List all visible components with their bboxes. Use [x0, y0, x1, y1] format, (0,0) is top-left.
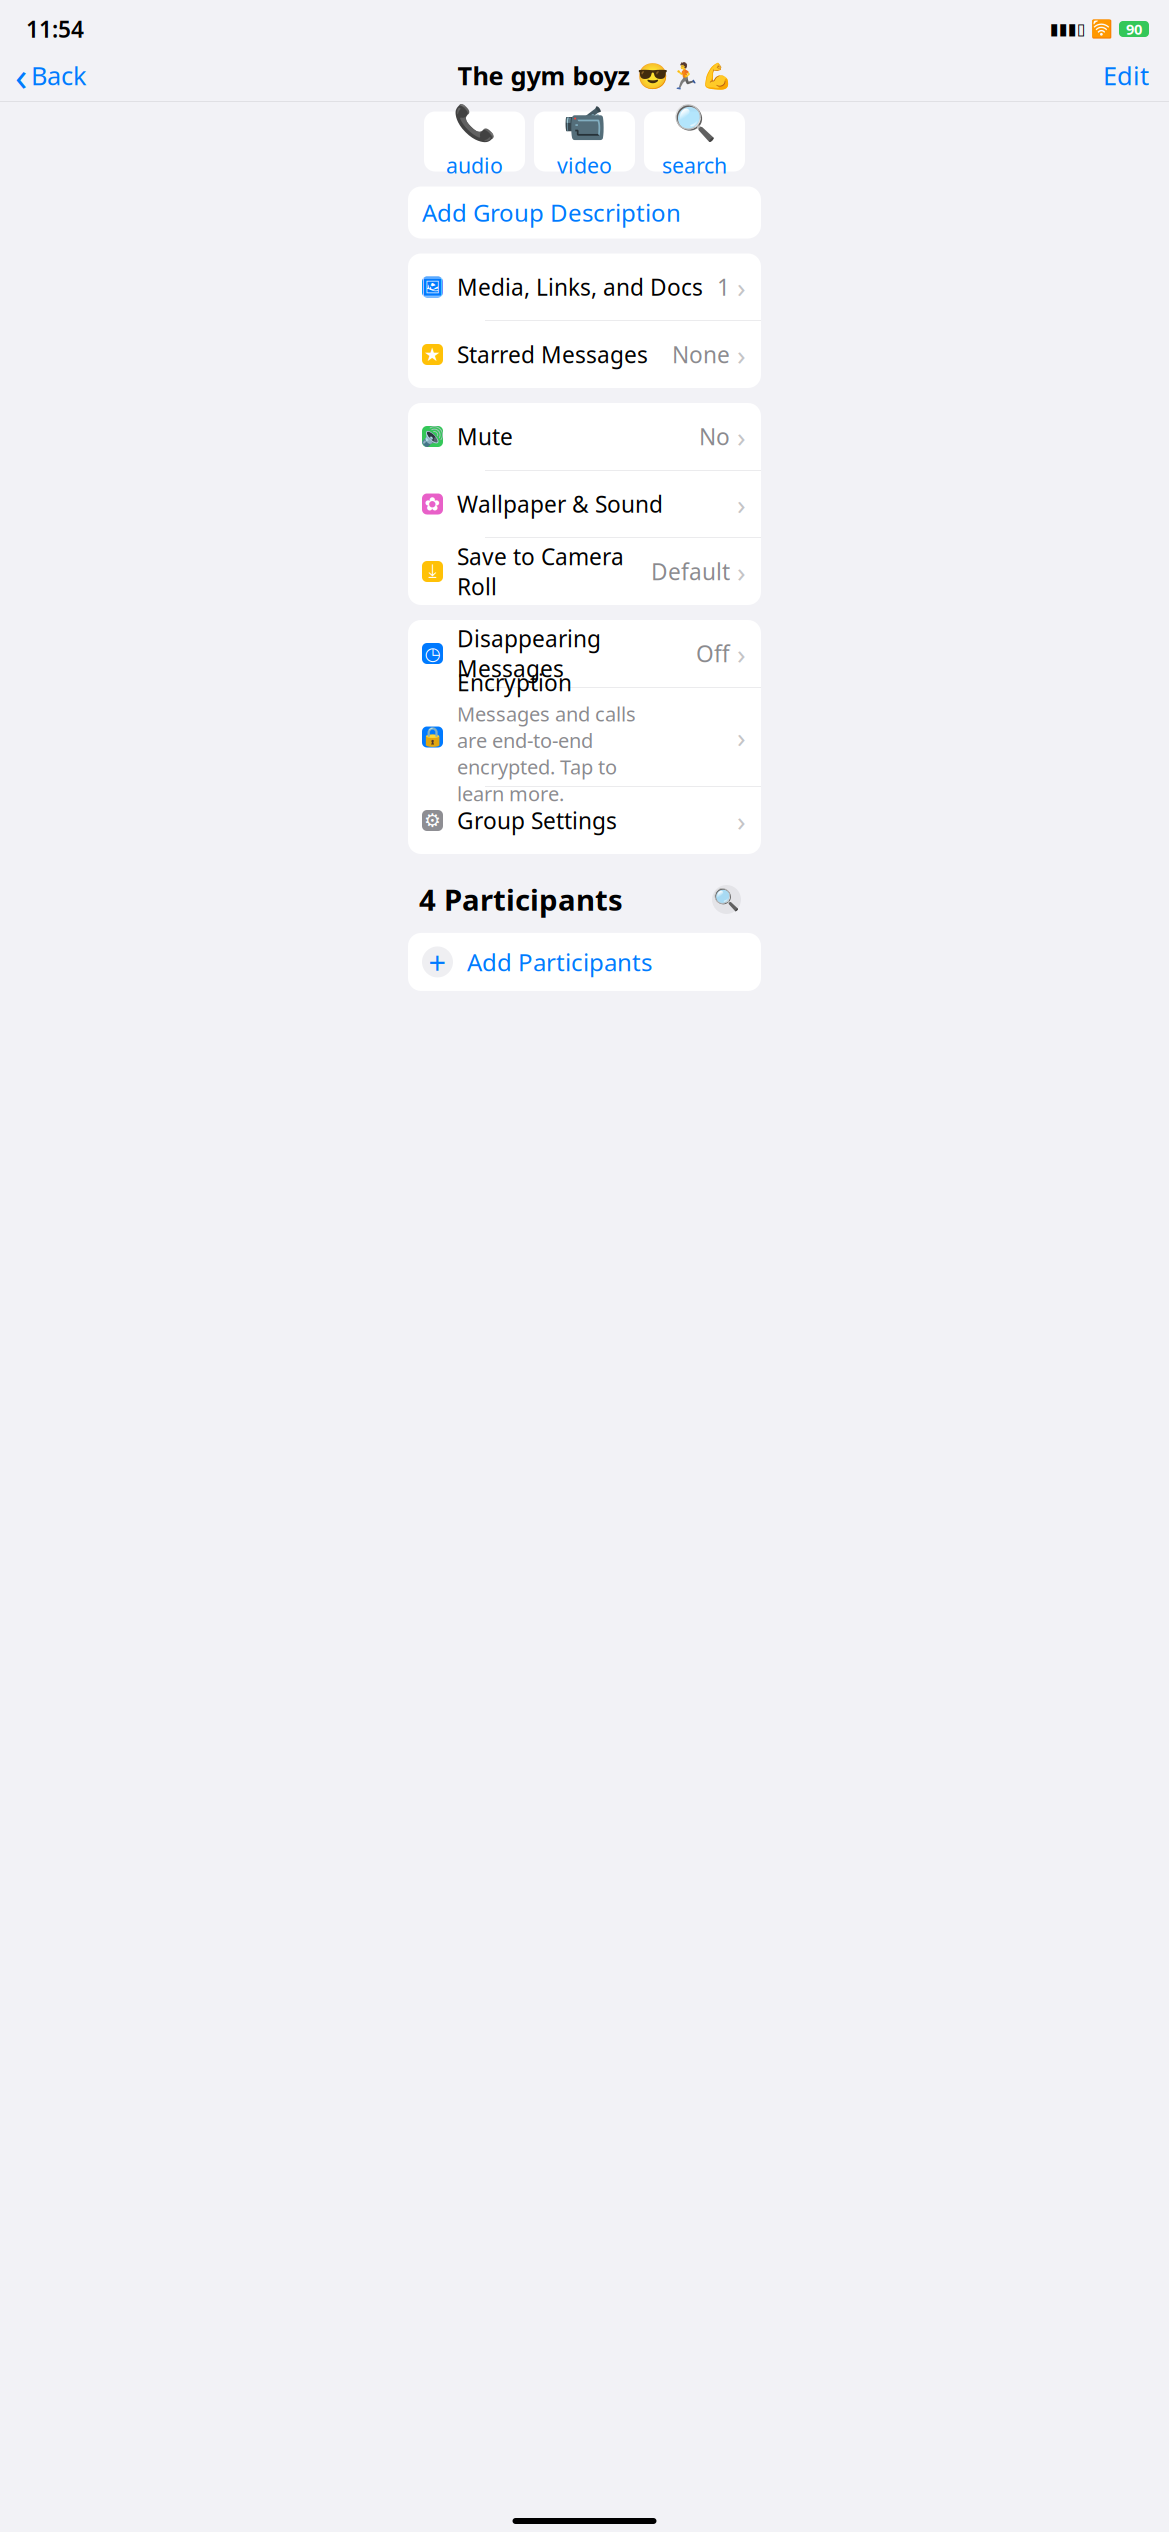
- staticText: +: [428, 942, 446, 982]
- button[interactable]: 🔍: [644, 111, 745, 171]
- staticText: ›: [737, 802, 746, 839]
- staticText: ›: [737, 268, 746, 306]
- staticText: ‹: [15, 49, 27, 102]
- staticText: ⤓: [428, 562, 436, 581]
- button[interactable]: Edit: [1103, 53, 1169, 98]
- staticText: ›: [737, 418, 746, 455]
- staticText: 🔊: [421, 426, 444, 447]
- button[interactable]: ★: [408, 321, 761, 388]
- button[interactable]: ⚙: [408, 787, 761, 854]
- staticText: None: [672, 339, 730, 369]
- staticText: Media, Links, and Docs: [457, 272, 703, 302]
- staticText: ⚙: [424, 810, 441, 831]
- staticText: 90: [1126, 19, 1142, 39]
- staticText: Wallpaper & Sound: [457, 489, 663, 519]
- button[interactable]: ✿: [408, 470, 761, 537]
- button[interactable]: ‹: [0, 43, 87, 108]
- staticText: 🛜: [1091, 19, 1113, 39]
- button[interactable]: Add Group Description: [408, 186, 761, 238]
- button[interactable]: ⤓: [408, 538, 761, 605]
- staticText: 🔍: [713, 887, 740, 912]
- button[interactable]: 📹: [534, 111, 635, 171]
- button[interactable]: +: [408, 933, 761, 991]
- button[interactable]: ◷: [408, 620, 761, 687]
- staticText: ›: [737, 718, 746, 756]
- staticText: Group Settings: [457, 805, 617, 835]
- staticText: Add Group Description: [422, 197, 681, 228]
- staticText: No: [699, 421, 730, 451]
- staticText: Off: [696, 638, 730, 668]
- staticText: Edit: [1103, 59, 1149, 92]
- button[interactable]: Search participants: [712, 885, 741, 914]
- staticText: 📹: [563, 103, 606, 143]
- staticText: Default: [651, 556, 730, 586]
- staticText: 11:54: [26, 14, 84, 44]
- staticText: video: [557, 151, 612, 179]
- staticText: Encryption: [457, 667, 572, 697]
- staticText: Back: [31, 59, 87, 92]
- staticText: Save to Camera Roll: [457, 541, 624, 602]
- button[interactable]: 📞: [424, 111, 525, 171]
- staticText: 1: [717, 272, 730, 302]
- staticText: 🖼: [420, 276, 444, 298]
- staticText: audio: [446, 151, 503, 179]
- staticText: 4 Participants: [419, 880, 623, 919]
- staticText: 🔒: [421, 726, 444, 748]
- staticText: ▮▮▮▯: [1050, 20, 1086, 38]
- staticText: Starred Messages: [457, 339, 648, 369]
- staticText: 📞: [453, 103, 496, 143]
- staticText: ›: [737, 336, 746, 373]
- staticText: Disappearing Messages: [457, 623, 601, 684]
- staticText: Messages and calls are end-to-end encryp…: [457, 700, 636, 807]
- staticText: ✿: [424, 493, 440, 515]
- staticText: Add Participants: [467, 946, 652, 978]
- button[interactable]: 🖼: [408, 253, 761, 320]
- staticText: ◷: [424, 643, 440, 664]
- staticText: ★: [424, 344, 441, 365]
- staticText: ›: [737, 635, 746, 672]
- staticText: The gym boyz 😎🏃💪: [457, 59, 732, 92]
- staticText: ›: [737, 553, 746, 590]
- staticText: search: [662, 151, 727, 179]
- button[interactable]: 🔊: [408, 403, 761, 470]
- staticText: ›: [737, 485, 746, 523]
- staticText: Mute: [457, 421, 513, 451]
- button[interactable]: 🔒: [408, 687, 761, 786]
- staticText: 🔍: [673, 103, 716, 143]
